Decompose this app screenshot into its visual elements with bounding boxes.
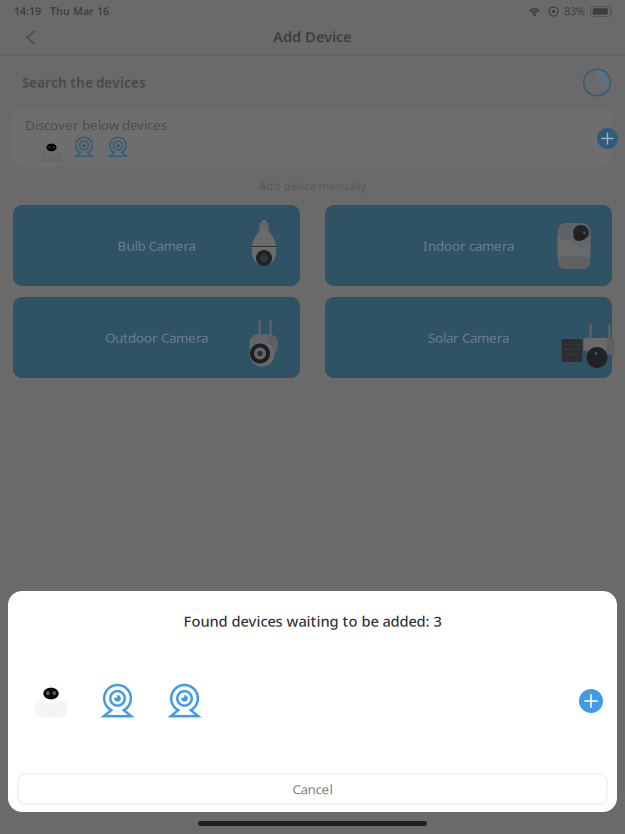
staticText: Thu Mar 16: [50, 4, 109, 18]
button[interactable]: Bulb Camera: [13, 205, 300, 286]
staticText: Outdoor Camera: [105, 329, 208, 346]
button[interactable]: Add discovered devices: [597, 128, 618, 149]
staticText: Found devices waiting to be added: 3: [183, 611, 441, 631]
button[interactable]: Indoor camera: [325, 205, 612, 286]
button[interactable]: Indoor camera: [31, 671, 71, 715]
staticText: Add device manually: [259, 179, 365, 193]
staticText: Cancel: [292, 780, 332, 798]
button[interactable]: Outdoor Camera: [13, 297, 300, 378]
staticText: Search the devices: [22, 74, 146, 91]
button[interactable]: Back: [11, 21, 51, 54]
button[interactable]: Add all devices: [571, 681, 611, 721]
button[interactable]: Solar Camera: [325, 297, 612, 378]
button[interactable]: Webcam, device 3: [164, 679, 204, 723]
staticText: 83%: [564, 4, 585, 18]
staticText: Add Device: [273, 27, 352, 46]
staticText: Discover below devices: [25, 116, 167, 134]
button[interactable]: Webcam, device 2: [97, 679, 137, 723]
staticText: 14:19: [14, 4, 41, 18]
button[interactable]: Cancel: [18, 774, 607, 804]
staticText: Bulb Camera: [117, 237, 195, 254]
staticText: Solar Camera: [428, 329, 509, 346]
staticText: Indoor camera: [423, 237, 514, 254]
